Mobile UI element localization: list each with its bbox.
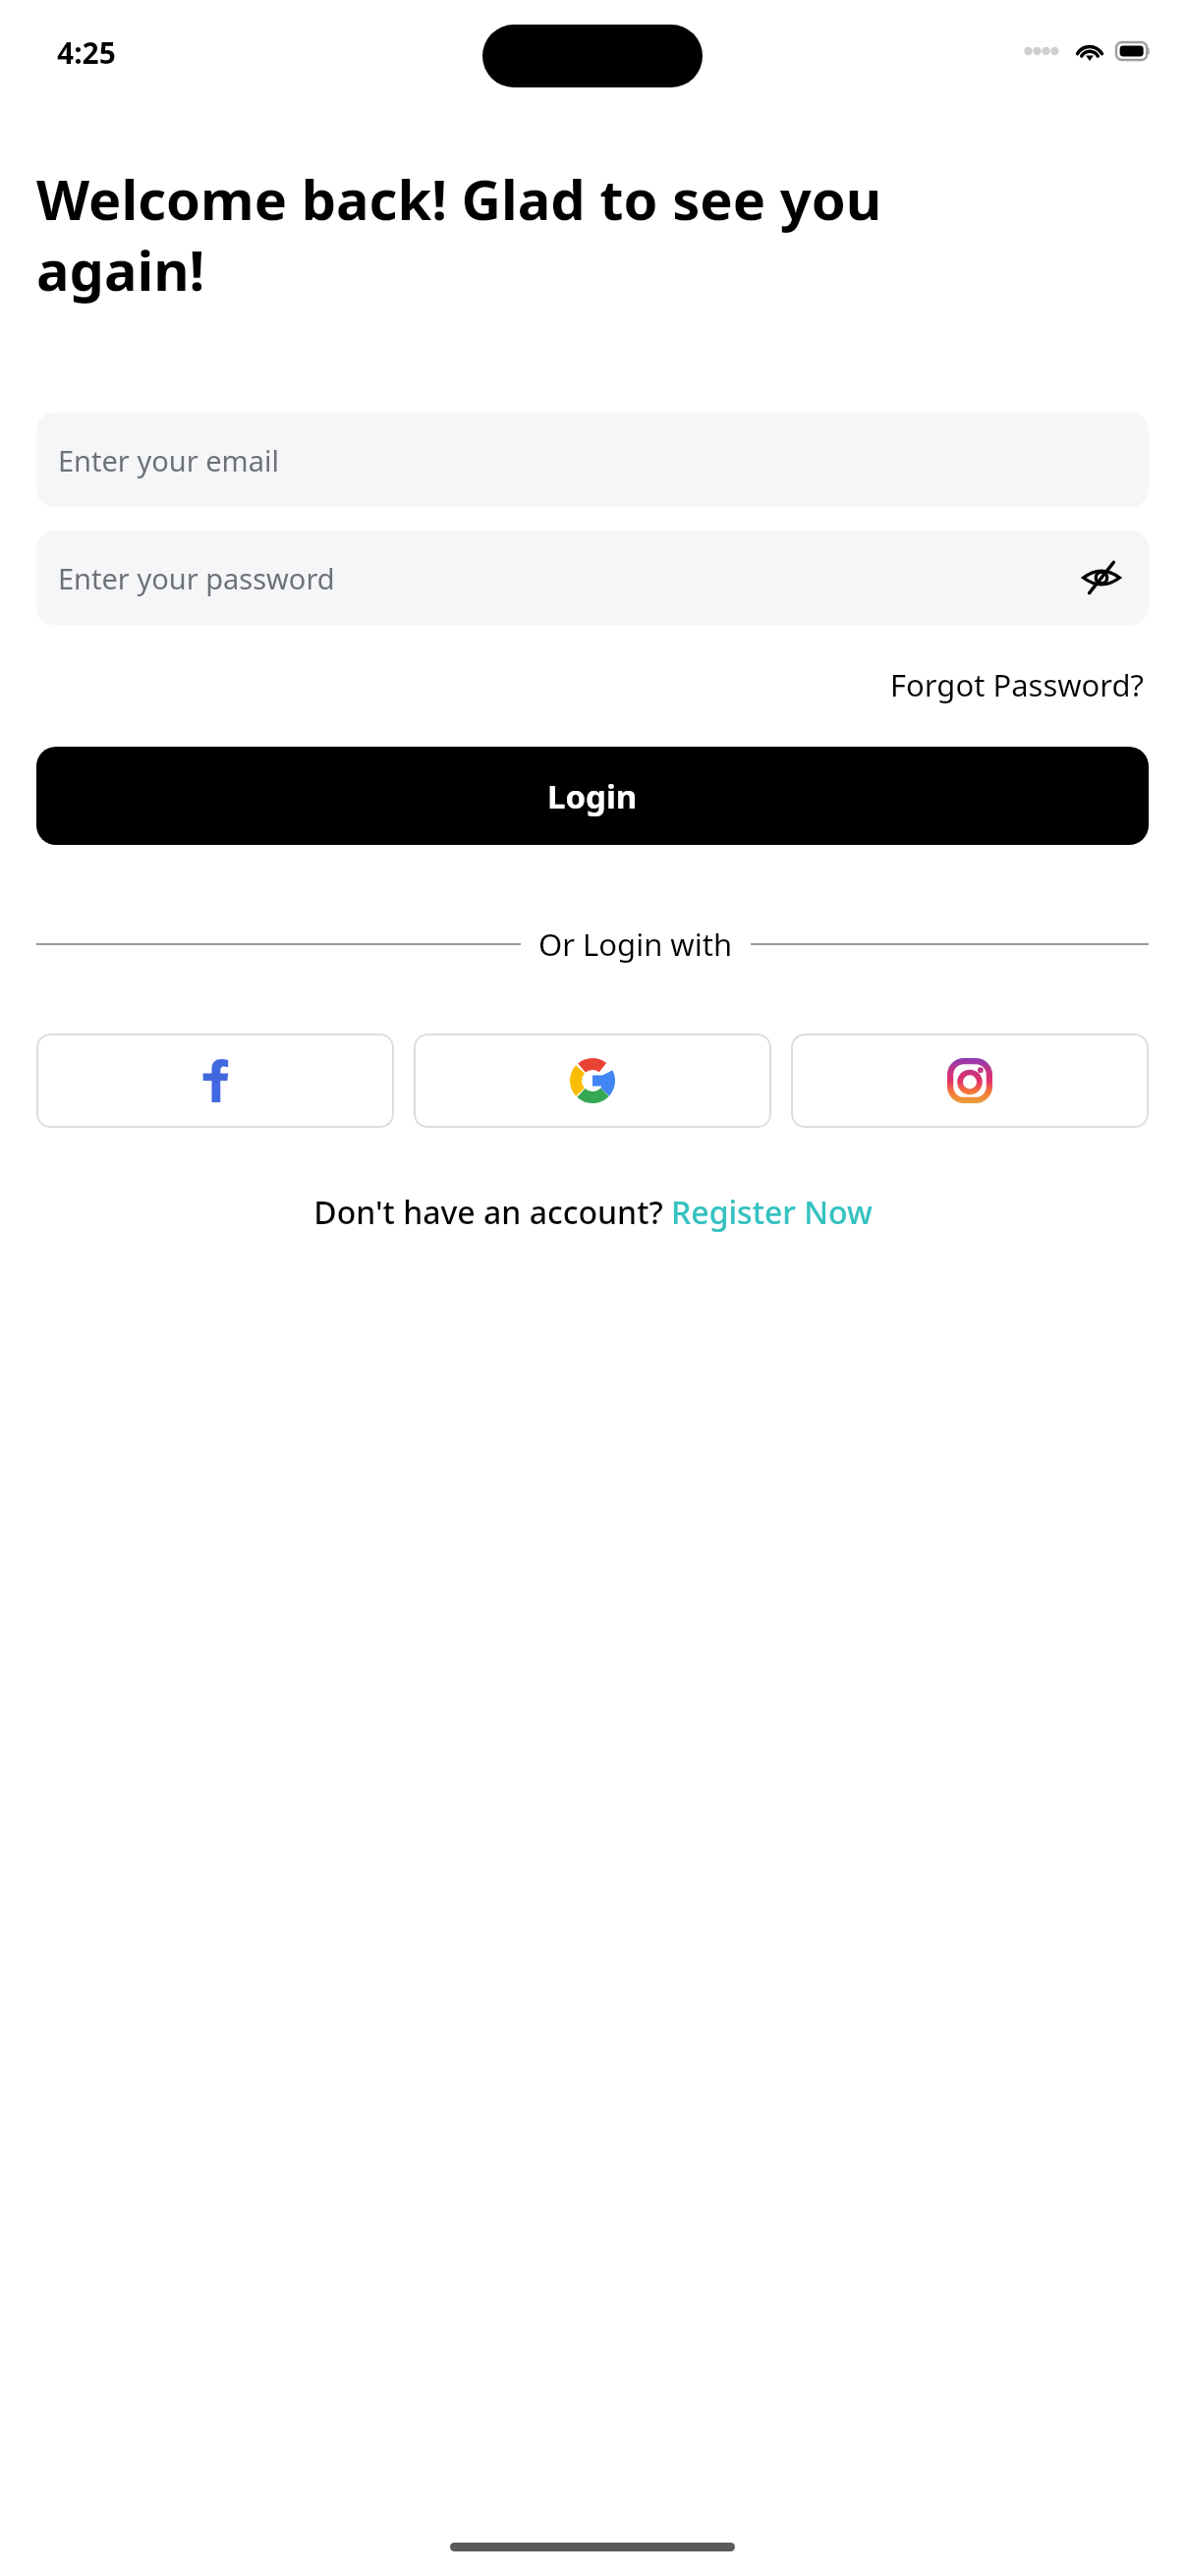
button[interactable]: Sign in with Facebook: [36, 1034, 394, 1128]
staticText: 4:25: [57, 32, 116, 73]
staticText: Enter your email: [58, 441, 279, 479]
button[interactable]: Show password: [1076, 552, 1127, 603]
staticText: Forgot Password?: [890, 664, 1145, 705]
staticText: Login: [547, 774, 638, 818]
button[interactable]: Login: [36, 747, 1149, 845]
button[interactable]: Enter your email: [36, 413, 1149, 507]
button[interactable]: Forgot Password?: [886, 660, 1149, 709]
staticText: Enter your password: [58, 559, 335, 597]
button[interactable]: Sign in with Google: [414, 1034, 771, 1128]
button[interactable]: Don't have an account? Register Now: [36, 1191, 1149, 1234]
button[interactable]: Enter your password: [36, 531, 1149, 625]
staticText: Welcome back! Glad to see you again!: [36, 161, 1015, 307]
staticText: Or Login with: [538, 924, 733, 965]
button[interactable]: Sign in with Instagram: [791, 1034, 1149, 1128]
staticText: Don't have an account? Register Now: [313, 1191, 873, 1234]
